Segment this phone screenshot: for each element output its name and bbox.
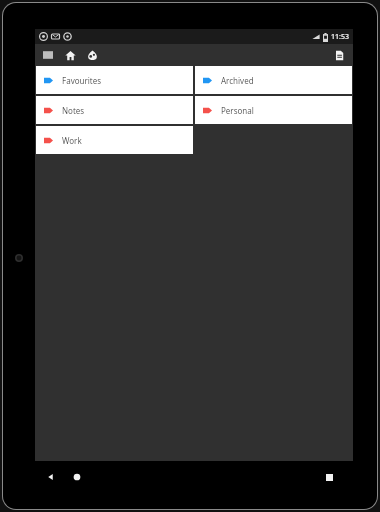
button[interactable]: Recent apps: [319, 467, 339, 487]
button[interactable]: Personal: [195, 96, 352, 124]
button[interactable]: Notes: [36, 96, 193, 124]
button[interactable]: Theme: [84, 47, 100, 63]
button[interactable]: Home: [62, 47, 78, 63]
button[interactable]: Notes: [331, 47, 347, 63]
button[interactable]: Archived: [195, 66, 352, 94]
staticText: Work: [62, 135, 82, 146]
button[interactable]: Work: [36, 126, 193, 154]
button[interactable]: Back: [41, 467, 61, 487]
staticText: Archived: [221, 75, 254, 86]
staticText: Favourites: [62, 75, 102, 86]
button[interactable]: Favourites: [36, 66, 193, 94]
button[interactable]: Open navigation drawer: [40, 47, 56, 63]
staticText: Notes: [62, 105, 85, 116]
staticText: Personal: [221, 105, 254, 116]
button[interactable]: Home: [67, 467, 87, 487]
staticText: 11:53: [331, 32, 349, 42]
